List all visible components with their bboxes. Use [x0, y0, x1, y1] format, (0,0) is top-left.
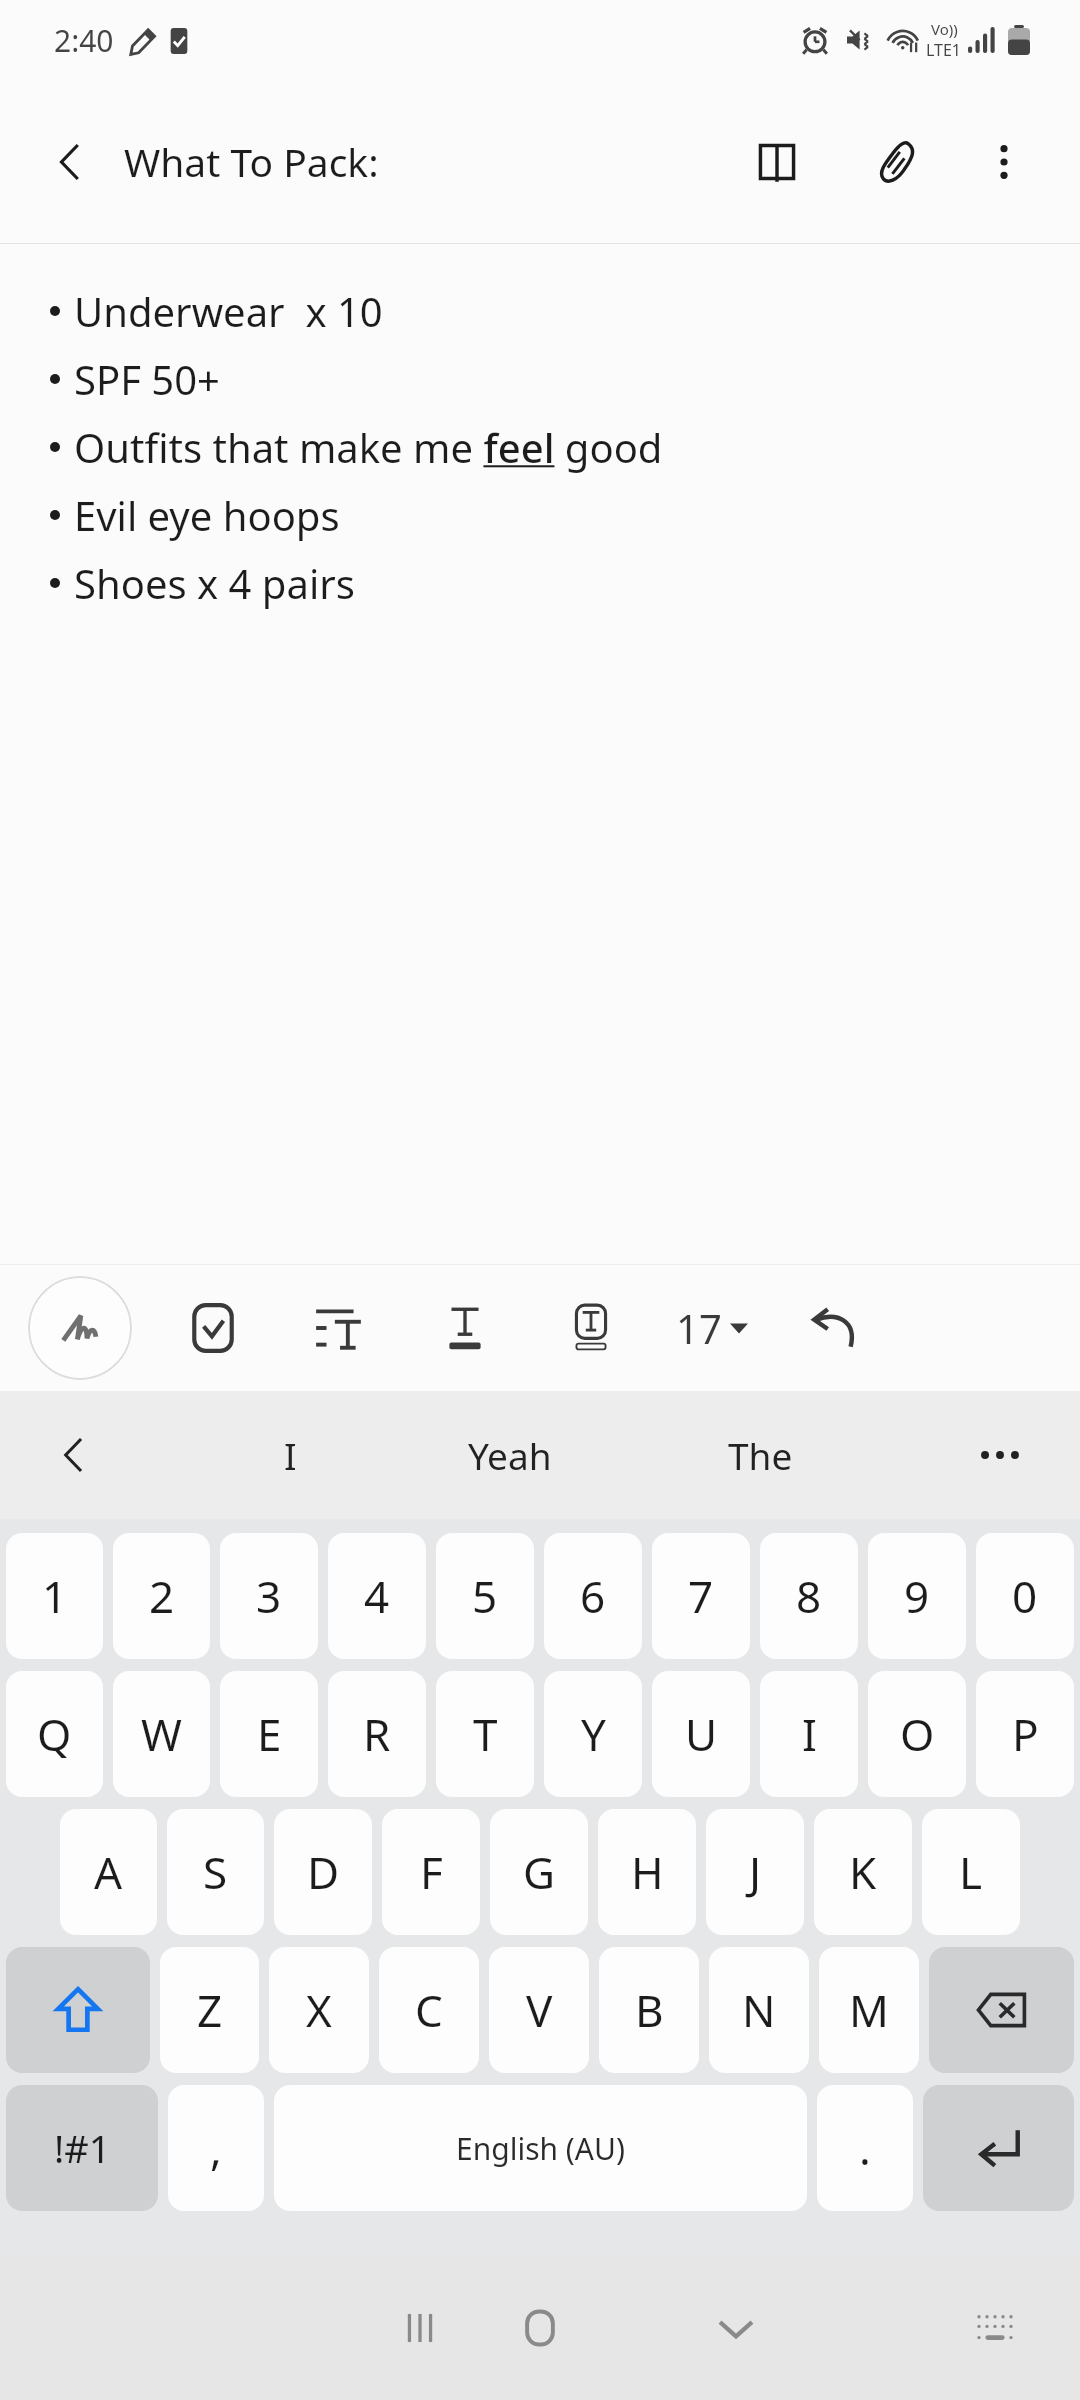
button[interactable]: S — [167, 1809, 264, 1935]
button[interactable]: 2 — [113, 1533, 210, 1659]
button[interactable]: Yeah — [400, 1391, 620, 1519]
staticText: Outfits that make me feel good — [74, 420, 663, 474]
button[interactable]: U — [652, 1671, 750, 1797]
staticText: !#1 — [54, 2122, 111, 2174]
button[interactable]: Y — [544, 1671, 642, 1797]
button[interactable]: Backspace — [929, 1947, 1074, 2073]
staticText: 9 — [904, 1566, 930, 1626]
staticText: 17 — [676, 1301, 722, 1355]
button[interactable]: Q — [6, 1671, 103, 1797]
button[interactable]: English (AU) — [274, 2085, 807, 2211]
button[interactable]: L — [922, 1809, 1020, 1935]
button[interactable]: 8 — [760, 1533, 858, 1659]
button[interactable]: W — [113, 1671, 210, 1797]
staticText: W — [141, 1704, 182, 1764]
staticText: Vo)) — [931, 19, 958, 39]
button[interactable]: C — [379, 1947, 479, 2073]
button[interactable]: O — [868, 1671, 966, 1797]
staticText: Underwear x 10 — [74, 284, 383, 338]
button[interactable]: Recents — [375, 2283, 465, 2373]
staticText: R — [363, 1704, 391, 1764]
button[interactable]: Z — [160, 1947, 259, 2073]
staticText: K — [849, 1842, 877, 1902]
button[interactable]: Handwriting — [28, 1276, 132, 1380]
staticText: U — [685, 1704, 718, 1764]
button[interactable]: Text style — [428, 1291, 502, 1365]
staticText: C — [415, 1980, 443, 2040]
staticText: 3 — [256, 1566, 282, 1626]
button[interactable]: B — [599, 1947, 699, 2073]
button[interactable]: Undo — [798, 1291, 872, 1365]
button[interactable]: Hide keyboard — [691, 2283, 781, 2373]
button[interactable]: 4 — [328, 1533, 426, 1659]
staticText: Yeah — [468, 1430, 552, 1480]
staticText: 0 — [1012, 1566, 1038, 1626]
button[interactable]: Keyboard layout — [952, 2285, 1038, 2371]
button[interactable]: , — [168, 2085, 264, 2211]
staticText: P — [1012, 1704, 1039, 1764]
button[interactable]: Previous — [36, 1417, 112, 1493]
button[interactable]: M — [819, 1947, 919, 2073]
staticText: Q — [37, 1704, 72, 1764]
button[interactable]: I — [760, 1671, 858, 1797]
staticText: 2 — [149, 1566, 175, 1626]
button[interactable]: Back — [40, 131, 102, 193]
staticText: 2:40 — [54, 20, 114, 61]
button[interactable]: F — [382, 1809, 480, 1935]
button[interactable]: The — [650, 1391, 870, 1519]
button[interactable]: Checklist — [176, 1291, 250, 1365]
button[interactable]: . — [817, 2085, 913, 2211]
button[interactable]: I — [200, 1391, 380, 1519]
button[interactable]: D — [274, 1809, 372, 1935]
staticText: Y — [581, 1704, 606, 1764]
button[interactable]: Attach — [854, 119, 940, 205]
staticText: E — [257, 1704, 282, 1764]
button[interactable]: 1 — [6, 1533, 103, 1659]
staticText: English (AU) — [456, 2128, 625, 2169]
button[interactable]: More — [960, 1415, 1040, 1495]
staticText: 6 — [580, 1566, 606, 1626]
button[interactable]: A — [60, 1809, 157, 1935]
staticText: 4 — [364, 1566, 390, 1626]
button[interactable]: 0 — [976, 1533, 1074, 1659]
button[interactable]: 3 — [220, 1533, 318, 1659]
staticText: . — [859, 2118, 871, 2178]
staticText: 8 — [796, 1566, 822, 1626]
staticText: H — [631, 1842, 664, 1902]
staticText: F — [420, 1842, 443, 1902]
button[interactable]: H — [598, 1809, 696, 1935]
button[interactable]: V — [489, 1947, 589, 2073]
button[interactable]: !#1 — [6, 2085, 158, 2211]
button[interactable]: 7 — [652, 1533, 750, 1659]
staticText: X — [306, 1980, 332, 2040]
staticText: SPF 50+ — [74, 352, 220, 406]
staticText: I — [802, 1704, 817, 1764]
button[interactable]: Text background — [554, 1291, 628, 1365]
button[interactable]: X — [269, 1947, 369, 2073]
button[interactable]: Shift — [6, 1947, 150, 2073]
button[interactable]: More options — [964, 122, 1044, 202]
staticText: I — [284, 1430, 297, 1480]
button[interactable]: J — [706, 1809, 804, 1935]
button[interactable]: K — [814, 1809, 912, 1935]
staticText: G — [523, 1842, 556, 1902]
button[interactable]: R — [328, 1671, 426, 1797]
button[interactable]: Reading view — [734, 119, 820, 205]
button[interactable]: 17 — [670, 1301, 754, 1355]
staticText: A — [94, 1842, 123, 1902]
button[interactable]: Paragraph style — [302, 1291, 376, 1365]
button[interactable]: G — [490, 1809, 588, 1935]
button[interactable]: T — [436, 1671, 534, 1797]
staticText: Z — [197, 1980, 223, 2040]
staticText: N — [742, 1980, 776, 2040]
button[interactable]: Enter — [923, 2085, 1074, 2211]
button[interactable]: N — [709, 1947, 809, 2073]
staticText: L — [959, 1842, 983, 1902]
button[interactable]: 9 — [868, 1533, 966, 1659]
button[interactable]: E — [220, 1671, 318, 1797]
staticText: B — [635, 1980, 664, 2040]
button[interactable]: P — [976, 1671, 1074, 1797]
button[interactable]: Home — [495, 2283, 585, 2373]
button[interactable]: 6 — [544, 1533, 642, 1659]
button[interactable]: 5 — [436, 1533, 534, 1659]
